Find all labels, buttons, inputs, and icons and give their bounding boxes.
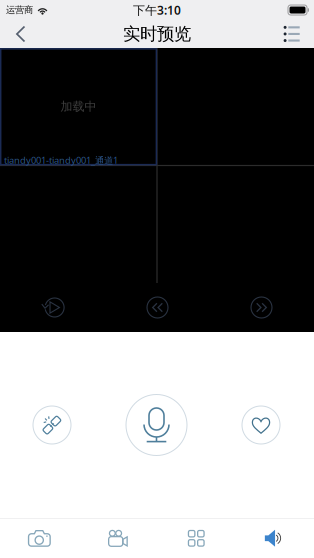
staticText: 实时预览 <box>123 23 191 45</box>
button[interactable]: Favorite <box>230 394 292 456</box>
button[interactable]: Back <box>0 21 43 47</box>
staticText: tiandy001-tiandy001_通道1 <box>4 154 118 166</box>
button[interactable]: Talk <box>125 394 187 456</box>
staticText: 下午3:10 <box>133 2 181 18</box>
button[interactable]: Fast forward <box>239 285 283 329</box>
button[interactable]: Audio <box>235 519 314 558</box>
button[interactable]: Layout <box>157 519 235 558</box>
button[interactable]: Channel list <box>267 21 314 47</box>
button[interactable]: Replay <box>29 284 75 330</box>
button[interactable]: Record <box>78 519 157 558</box>
staticText: 运营商 <box>6 4 33 16</box>
button[interactable]: Unlink <box>21 394 83 456</box>
staticText: 加载中 <box>60 99 96 114</box>
button[interactable]: Snapshot <box>0 519 78 558</box>
button[interactable]: Rewind <box>135 285 179 329</box>
